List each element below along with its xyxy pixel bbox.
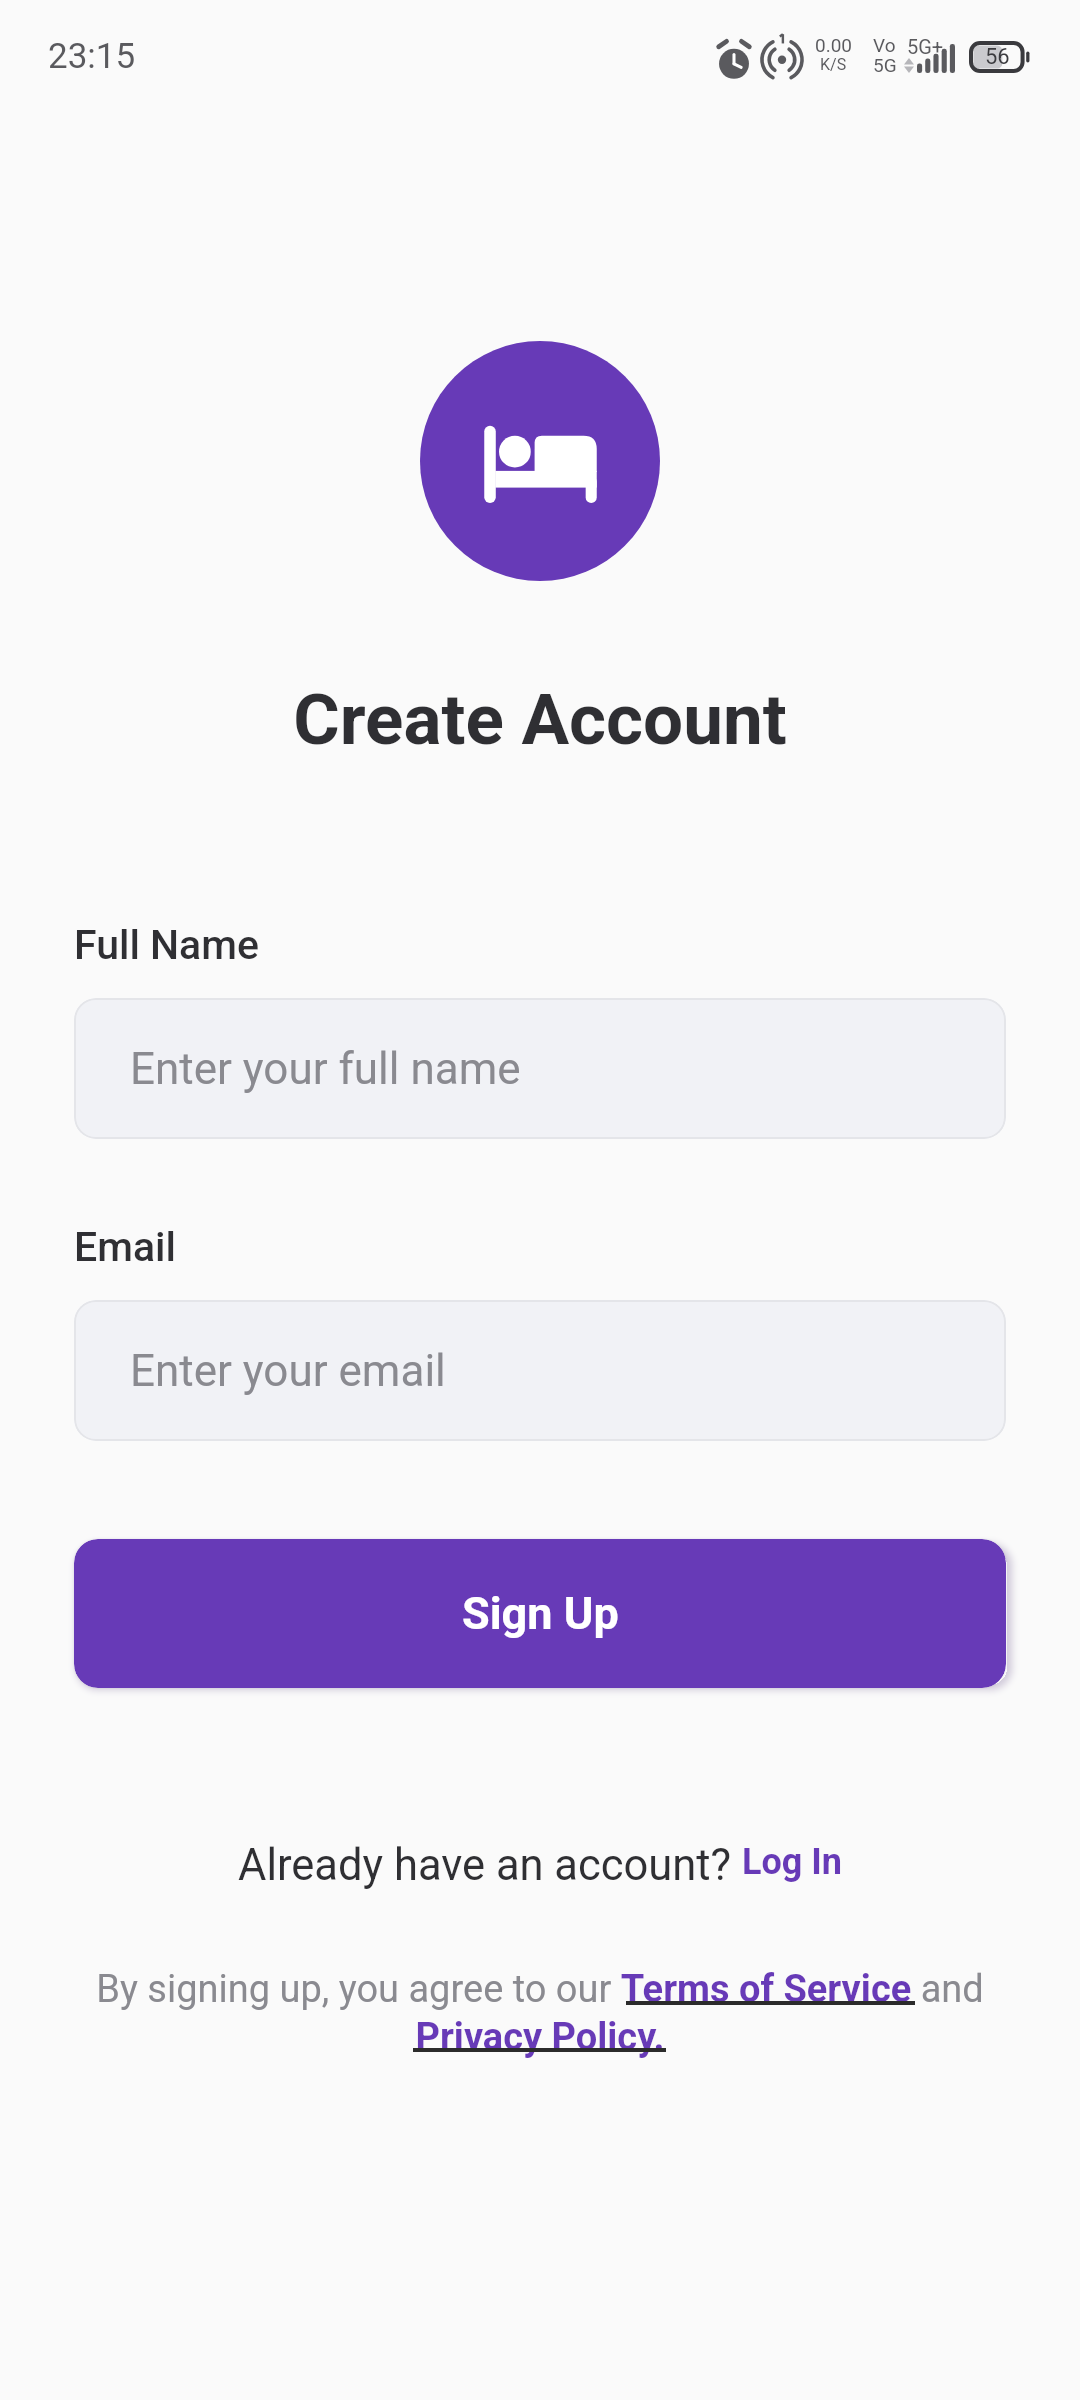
staticText: Email — [74, 1223, 176, 1271]
other: Alarm — [717, 40, 751, 78]
other: Battery 56 percent — [969, 41, 1034, 73]
staticText: 0.00 — [815, 34, 853, 56]
staticText: Enter your email — [130, 1345, 446, 1397]
staticText: 5G+ — [907, 35, 944, 58]
button[interactable]: Log In — [742, 1841, 843, 1883]
staticText: K/S — [820, 55, 847, 74]
button[interactable]: Enter your email — [74, 1300, 1006, 1441]
staticText: Already have an account? — [238, 1840, 742, 1891]
other: Hotel app logo — [420, 341, 660, 581]
button[interactable]: Enter your full name — [74, 998, 1006, 1139]
other: Hotspot — [760, 32, 804, 78]
staticText: Sign Up — [462, 1587, 619, 1640]
staticText: Full Name — [74, 921, 259, 969]
other: Mobile signal strength — [917, 44, 955, 73]
staticText: Enter your full name — [130, 1043, 521, 1095]
staticText: 23:15 — [48, 36, 136, 77]
staticText: Create Account — [0, 678, 1080, 761]
button[interactable]: Sign Up — [74, 1539, 1006, 1688]
staticText: By signing up, you agree to our Terms of… — [80, 1967, 1000, 2059]
staticText: 5G — [873, 54, 897, 76]
staticText: Log In — [742, 1841, 843, 1883]
staticText: 56 — [985, 44, 1010, 70]
button[interactable]: By signing up, you agree to our Terms of… — [0, 1967, 1080, 2059]
staticText: Vo — [873, 34, 896, 56]
